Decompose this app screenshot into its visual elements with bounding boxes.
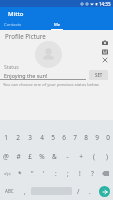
button[interactable]: + bbox=[74, 147, 87, 165]
button[interactable]: 8 bbox=[80, 128, 91, 147]
staticText: % bbox=[39, 152, 45, 161]
staticText: " bbox=[31, 169, 34, 178]
staticText: 1 bbox=[4, 133, 8, 142]
staticText: Mitto bbox=[8, 10, 24, 18]
staticText: ? bbox=[91, 169, 94, 178]
button[interactable]: 0 bbox=[102, 128, 113, 147]
staticText: Contacts bbox=[4, 22, 22, 28]
button[interactable]: SET bbox=[89, 70, 108, 80]
staticText: 6 bbox=[62, 133, 66, 142]
staticText: . bbox=[89, 187, 91, 196]
staticText: ( bbox=[93, 152, 95, 161]
staticText: ' bbox=[43, 169, 45, 178]
button[interactable]: 1 bbox=[0, 128, 12, 147]
staticText: / bbox=[77, 187, 80, 196]
button[interactable]: * bbox=[14, 165, 26, 182]
button[interactable]: Take photo bbox=[101, 39, 109, 47]
button[interactable]: 3 bbox=[24, 128, 36, 147]
staticText: =\< bbox=[4, 171, 11, 177]
staticText: 9 bbox=[95, 133, 99, 142]
staticText: 8 bbox=[84, 133, 88, 142]
button[interactable]: 6 bbox=[58, 128, 69, 147]
button[interactable]: Enter bbox=[99, 186, 110, 197]
button[interactable]: / bbox=[72, 182, 84, 200]
button[interactable]: £ bbox=[24, 147, 36, 165]
staticText: ABC bbox=[5, 188, 14, 194]
staticText: & bbox=[52, 152, 57, 161]
button[interactable]: Backspace bbox=[98, 165, 113, 182]
button[interactable]: Choose from gallery bbox=[101, 48, 109, 56]
button[interactable]: , bbox=[18, 182, 31, 200]
button[interactable]: . bbox=[84, 182, 96, 200]
button[interactable]: - bbox=[61, 147, 74, 165]
staticText: * bbox=[18, 169, 22, 178]
staticText: 2 bbox=[16, 133, 20, 142]
button[interactable]: ( bbox=[87, 147, 100, 165]
button[interactable]: % bbox=[36, 147, 48, 165]
staticText: + bbox=[79, 152, 83, 161]
staticText: ! bbox=[79, 169, 81, 178]
button[interactable]: =\< bbox=[0, 165, 14, 182]
button[interactable]: Remove picture bbox=[101, 56, 109, 64]
button[interactable]: 9 bbox=[91, 128, 102, 147]
staticText: Status bbox=[4, 64, 19, 71]
staticText: SET bbox=[95, 72, 103, 78]
button[interactable]: 7 bbox=[69, 128, 80, 147]
button[interactable]: ! bbox=[74, 165, 86, 182]
staticText: 5 bbox=[51, 133, 55, 142]
staticText: 4 bbox=[40, 133, 44, 142]
staticText: £ bbox=[28, 152, 32, 161]
button[interactable]: 4 bbox=[36, 128, 47, 147]
button[interactable]: ABC bbox=[0, 182, 18, 200]
staticText: Profile Picture bbox=[5, 32, 46, 40]
button[interactable]: ; bbox=[62, 165, 74, 182]
staticText: - bbox=[66, 152, 69, 161]
button[interactable]: # bbox=[12, 147, 24, 165]
button[interactable]: 2 bbox=[12, 128, 24, 147]
staticText: @ bbox=[3, 152, 9, 161]
staticText: 14:35 bbox=[99, 1, 111, 7]
button[interactable]: ) bbox=[100, 147, 113, 165]
button[interactable]: : bbox=[50, 165, 62, 182]
staticText: ; bbox=[67, 169, 69, 178]
staticText: ) bbox=[106, 152, 108, 161]
button[interactable]: @ bbox=[0, 147, 12, 165]
staticText: 0 bbox=[106, 133, 110, 142]
button[interactable]: ? bbox=[86, 165, 98, 182]
button[interactable]: Me bbox=[45, 20, 69, 30]
button[interactable]: ' bbox=[38, 165, 50, 182]
button[interactable]: 5 bbox=[47, 128, 58, 147]
staticText: 7 bbox=[73, 133, 77, 142]
staticText: Enjoying the sun! bbox=[4, 72, 48, 79]
staticText: Me bbox=[54, 22, 61, 28]
button[interactable]: Profile picture bbox=[35, 41, 62, 68]
staticText: : bbox=[55, 169, 57, 178]
button[interactable]: " bbox=[26, 165, 38, 182]
button[interactable]: & bbox=[48, 147, 61, 165]
staticText: You can choose one of your previous stat… bbox=[3, 82, 99, 88]
staticText: , bbox=[24, 187, 26, 196]
staticText: # bbox=[16, 152, 21, 161]
button[interactable]: Contacts bbox=[0, 20, 26, 30]
staticText: 3 bbox=[28, 133, 32, 142]
